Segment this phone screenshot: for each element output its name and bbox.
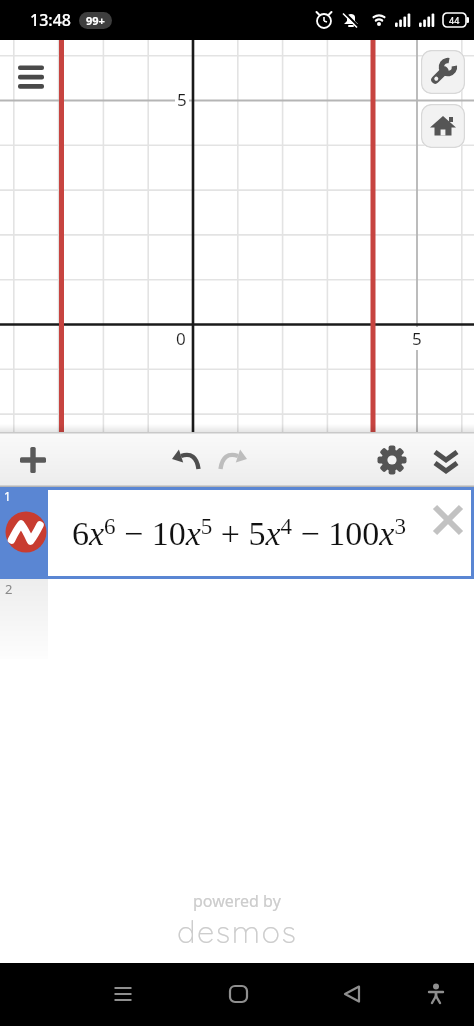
button[interactable] bbox=[424, 438, 468, 482]
staticText: powered by bbox=[193, 890, 281, 912]
button[interactable] bbox=[421, 104, 465, 148]
button[interactable] bbox=[421, 50, 465, 94]
button[interactable] bbox=[370, 438, 414, 482]
button[interactable] bbox=[218, 974, 258, 1014]
button[interactable] bbox=[163, 438, 207, 482]
button[interactable]: 2 bbox=[0, 579, 474, 659]
button[interactable] bbox=[212, 438, 256, 482]
staticText: 5 bbox=[412, 327, 422, 350]
staticText: 13:48 bbox=[30, 9, 71, 31]
button[interactable] bbox=[416, 974, 456, 1014]
staticText: 6x6 − 10x5 + 5x4 − 100x3 bbox=[72, 514, 406, 552]
button[interactable] bbox=[10, 53, 54, 97]
staticText: 2 bbox=[5, 580, 13, 598]
staticText: 1 bbox=[4, 488, 11, 504]
button[interactable] bbox=[332, 974, 372, 1014]
staticText: 99+ bbox=[86, 13, 105, 28]
button[interactable] bbox=[11, 438, 55, 482]
button[interactable]: 6x6 − 10x5 + 5x4 − 100x3 bbox=[0, 487, 474, 579]
staticText: 5 bbox=[177, 88, 187, 111]
staticText: 44 bbox=[449, 14, 460, 26]
button[interactable] bbox=[430, 502, 466, 538]
staticText: desmos bbox=[177, 912, 298, 951]
staticText: 0 bbox=[176, 327, 186, 350]
button[interactable] bbox=[103, 974, 143, 1014]
